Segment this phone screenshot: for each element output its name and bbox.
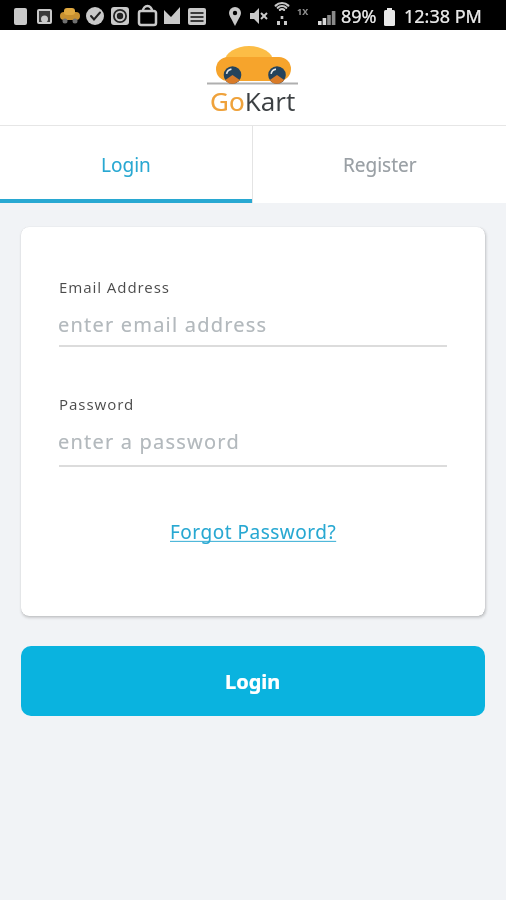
staticText: Login <box>101 152 151 178</box>
button[interactable]: Login <box>21 646 485 716</box>
staticText: Email Address <box>59 277 170 297</box>
button[interactable]: Register <box>253 126 506 203</box>
button[interactable]: Forgot Password? <box>170 519 337 545</box>
staticText: 89% <box>341 4 377 29</box>
staticText: enter email address <box>58 311 268 338</box>
staticText: Password <box>59 394 135 414</box>
staticText: enter a password <box>58 428 240 455</box>
button[interactable]: Login <box>0 126 252 203</box>
staticText: Login <box>225 668 281 695</box>
staticText: Register <box>343 152 417 178</box>
staticText: 12:38 PM <box>404 4 482 29</box>
staticText: 1X <box>297 5 309 17</box>
staticText: GoKart <box>210 83 296 118</box>
staticText: Forgot Password? <box>170 519 337 545</box>
